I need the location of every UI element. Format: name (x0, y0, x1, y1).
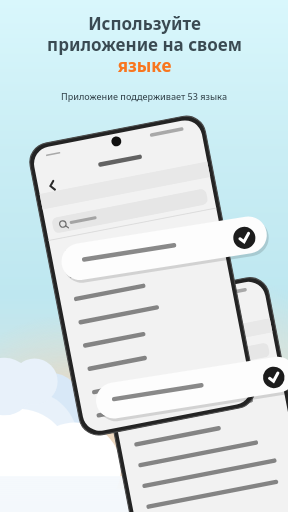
staticText: Приложение поддерживает 53 языка (61, 90, 227, 102)
staticText: Используйте приложение на своем языке (47, 12, 242, 77)
button[interactable]: Выбрать язык Русский (82, 196, 222, 226)
button[interactable]: Выбрать валюту Доллар США USD (112, 352, 262, 382)
